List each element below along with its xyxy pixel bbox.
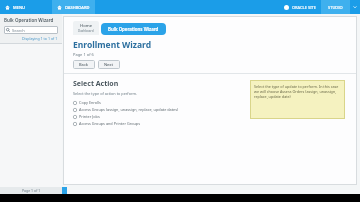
staticText: Displaying 1 to 1 of 1: [22, 36, 58, 41]
staticText: Page 1 of 6: [73, 52, 94, 57]
button[interactable]: Access Groups and Printer Groups: [73, 120, 250, 127]
staticText: Home: [80, 23, 93, 29]
staticText: MENU: [13, 5, 25, 10]
staticText: Page 1 of 1: [22, 188, 41, 193]
button[interactable]: Bulk Operations Wizard: [101, 23, 166, 35]
button[interactable]: ORACLE SITE: [279, 0, 321, 14]
staticText: Select the type of update to perform. In…: [254, 84, 341, 99]
staticText: Select the type of action to perform.: [73, 91, 138, 96]
staticText: DASHBOARD: [65, 5, 90, 10]
staticText: Back: [79, 62, 89, 67]
staticText: Printer Jobs: [79, 114, 100, 119]
staticText: Search: [12, 28, 25, 33]
button[interactable]: Access Groups (assign, unassign, replace…: [73, 106, 250, 113]
button[interactable]: MENU: [0, 0, 30, 14]
button[interactable]: Back: [73, 60, 95, 69]
button[interactable]: Search: [4, 26, 58, 34]
button[interactable]: More options: [350, 0, 360, 14]
button[interactable]: DASHBOARD: [52, 0, 95, 14]
button[interactable]: Next: [98, 60, 120, 69]
button[interactable]: Printer Jobs: [73, 113, 250, 120]
staticText: Dashboard: [78, 29, 94, 33]
staticText: ORACLE SITE: [292, 5, 316, 10]
staticText: Access Groups and Printer Groups: [79, 121, 140, 126]
button[interactable]: STUDIO: [321, 0, 350, 14]
staticText: Enrollment Wizard: [73, 39, 152, 51]
button[interactable]: Copy Enrolls: [73, 99, 250, 106]
staticText: Access Groups (assign, unassign, replace…: [79, 107, 179, 112]
staticText: STUDIO: [328, 5, 343, 10]
staticText: Select Action: [73, 79, 119, 89]
staticText: Copy Enrolls: [79, 100, 101, 105]
staticText: Bulk Operations Wizard: [108, 26, 159, 32]
staticText: Next: [104, 62, 114, 67]
staticText: Bulk Operation Wizard: [4, 17, 54, 23]
button[interactable]: Home: [73, 21, 99, 35]
